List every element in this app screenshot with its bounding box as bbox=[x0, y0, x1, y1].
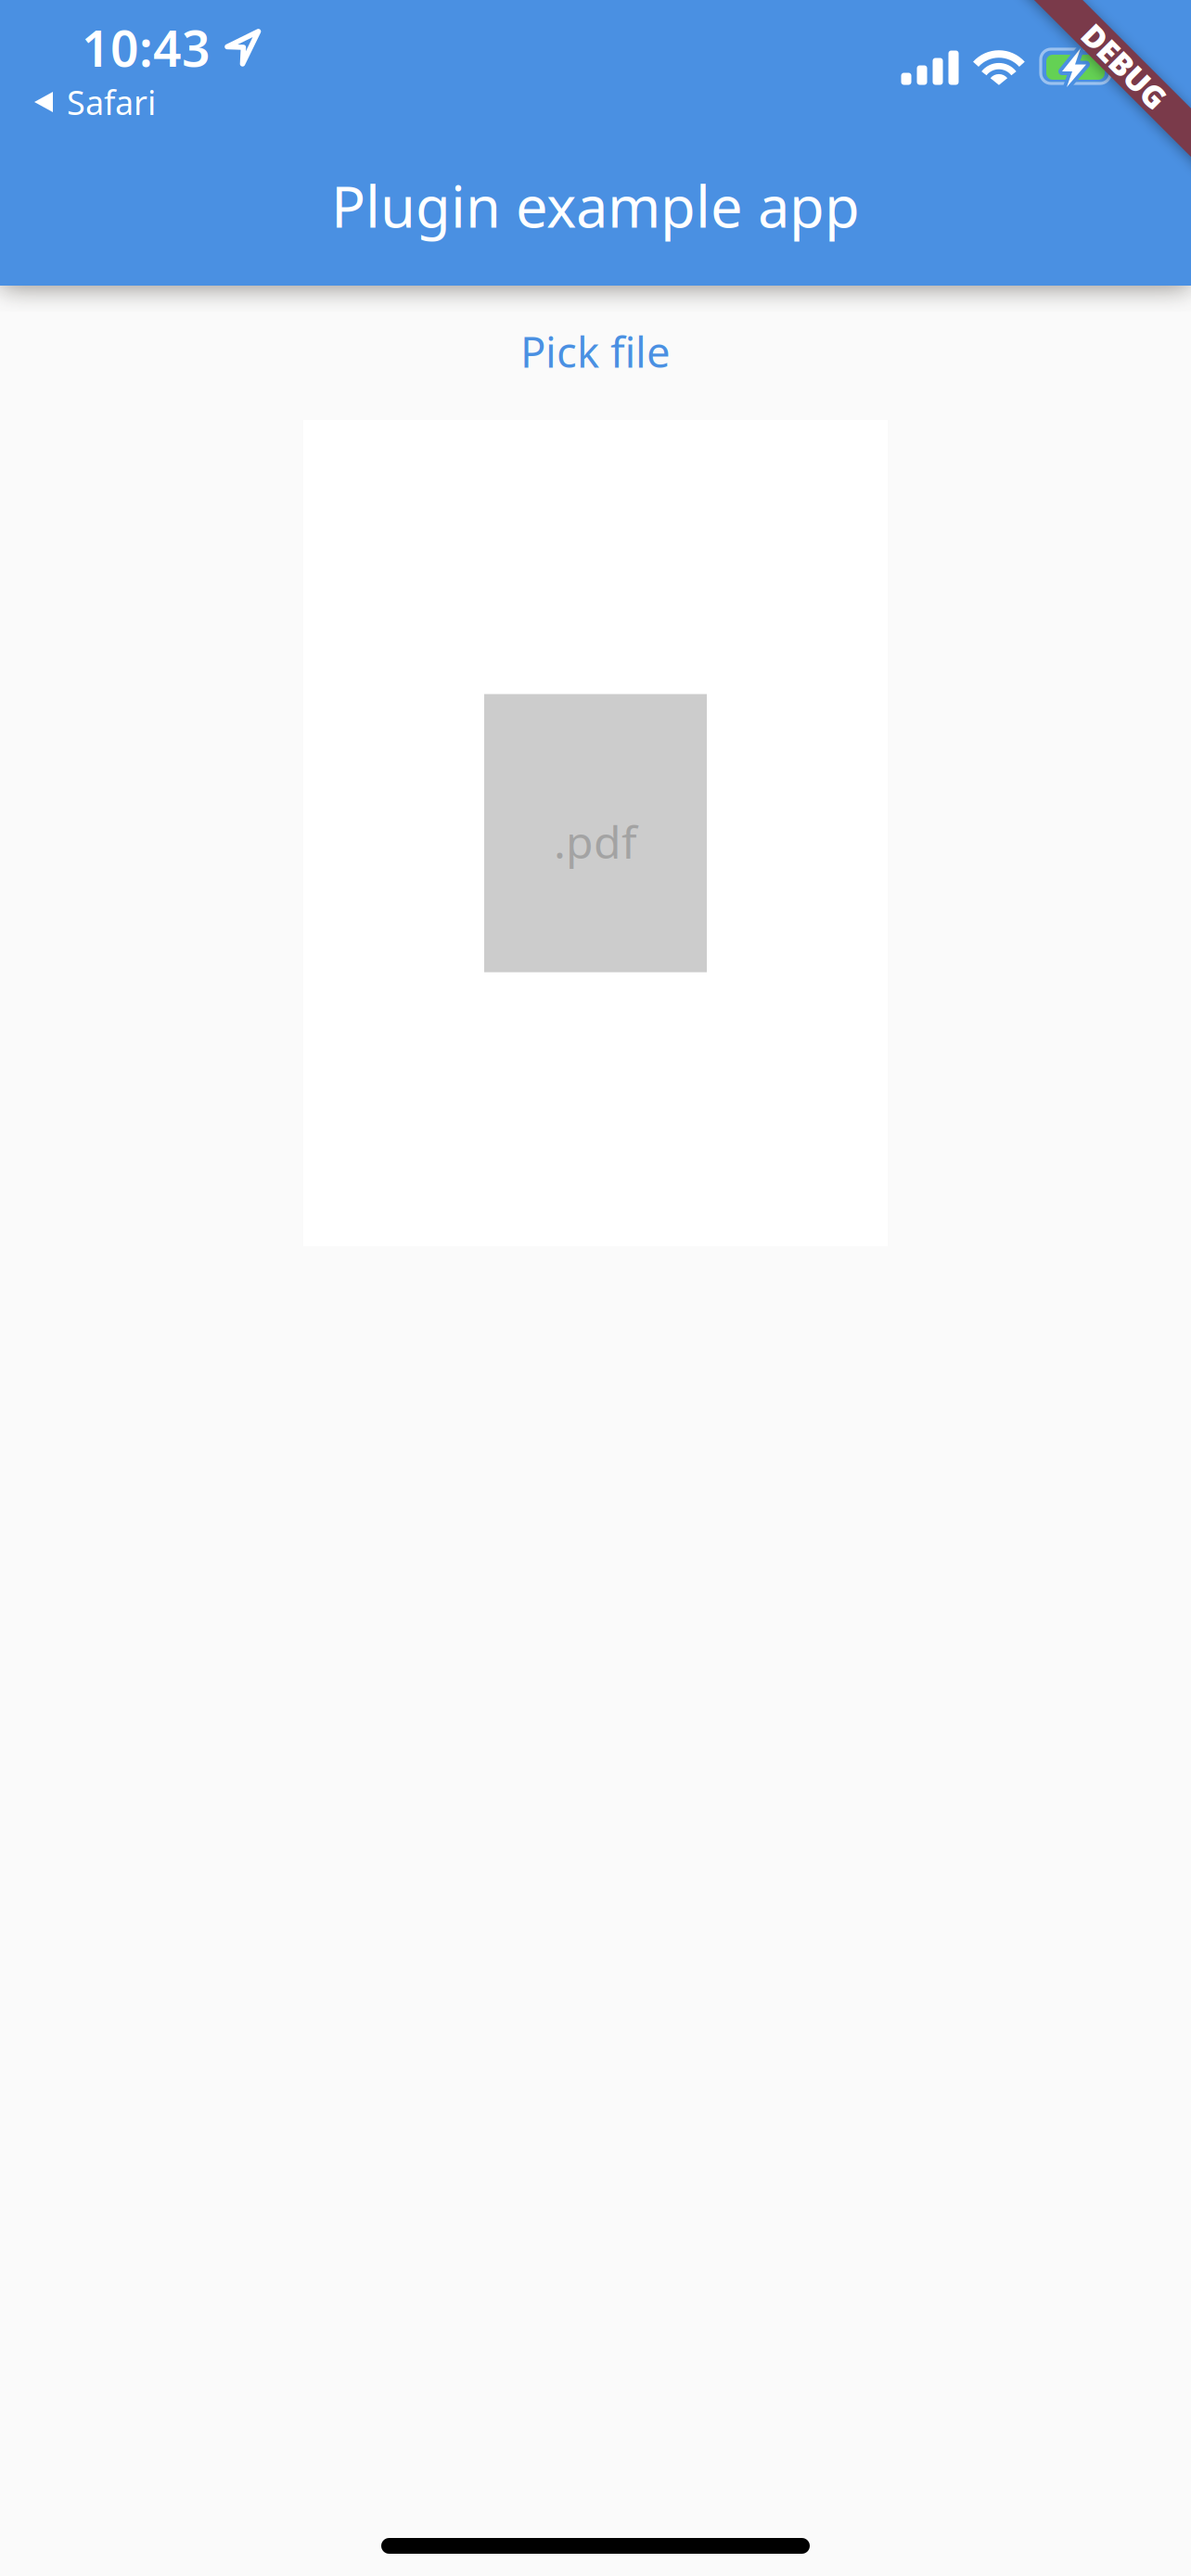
staticText: .pdf bbox=[554, 812, 637, 871]
staticText: Plugin example app bbox=[331, 168, 860, 243]
staticText: 10:43 bbox=[82, 15, 211, 80]
staticText: Pick file bbox=[520, 324, 671, 379]
button[interactable]: Pick file bbox=[507, 318, 684, 385]
staticText: DEBUG bbox=[1072, 46, 1178, 87]
button[interactable]: Safari bbox=[34, 85, 156, 119]
staticText: Safari bbox=[67, 80, 156, 124]
